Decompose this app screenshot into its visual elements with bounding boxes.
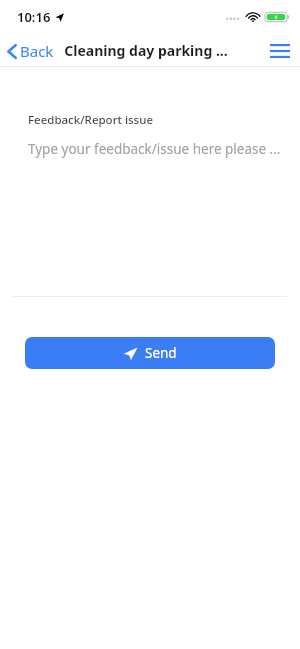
- staticText: 10:16: [17, 8, 51, 26]
- staticText: Send: [145, 344, 177, 362]
- button[interactable]: Send: [25, 337, 275, 369]
- staticText: Back: [20, 41, 54, 61]
- button[interactable]: Menu: [260, 38, 300, 64]
- button[interactable]: Back: [0, 37, 62, 65]
- staticText: Type your feedback/issue here please ...: [28, 140, 281, 158]
- button[interactable]: Type your feedback/issue here please ...: [0, 140, 300, 290]
- staticText: Cleaning day parking ...: [64, 41, 228, 60]
- staticText: Feedback/Report issue: [28, 112, 153, 128]
